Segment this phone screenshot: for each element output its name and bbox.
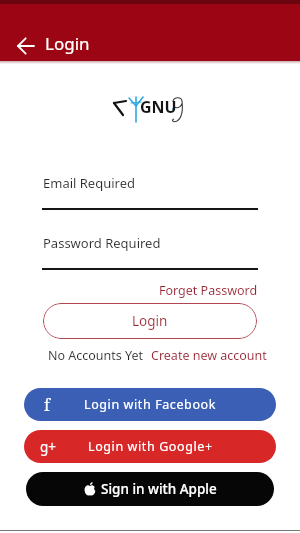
button[interactable]: Forget Password [159, 282, 258, 299]
staticText: GNU [140, 96, 177, 118]
staticText: g+ [40, 438, 57, 456]
staticText: No Accounts Yet [48, 347, 144, 364]
staticText: Login with Google+ [88, 438, 213, 455]
staticText: Email Required [43, 174, 136, 192]
staticText: Password Required [43, 234, 161, 252]
staticText: Sign in with Apple [101, 480, 217, 498]
button[interactable]: Create new account [151, 347, 267, 364]
button[interactable]: f [24, 388, 276, 421]
staticText: Login [45, 32, 90, 55]
staticText: Login [132, 312, 168, 330]
button[interactable]: Sign in with Apple [26, 472, 274, 506]
button[interactable]: g+ [24, 430, 276, 463]
button[interactable]: Login [43, 303, 257, 339]
button[interactable] [8, 28, 44, 64]
staticText: Login with Facebook [84, 396, 216, 413]
staticText: f [44, 394, 50, 416]
